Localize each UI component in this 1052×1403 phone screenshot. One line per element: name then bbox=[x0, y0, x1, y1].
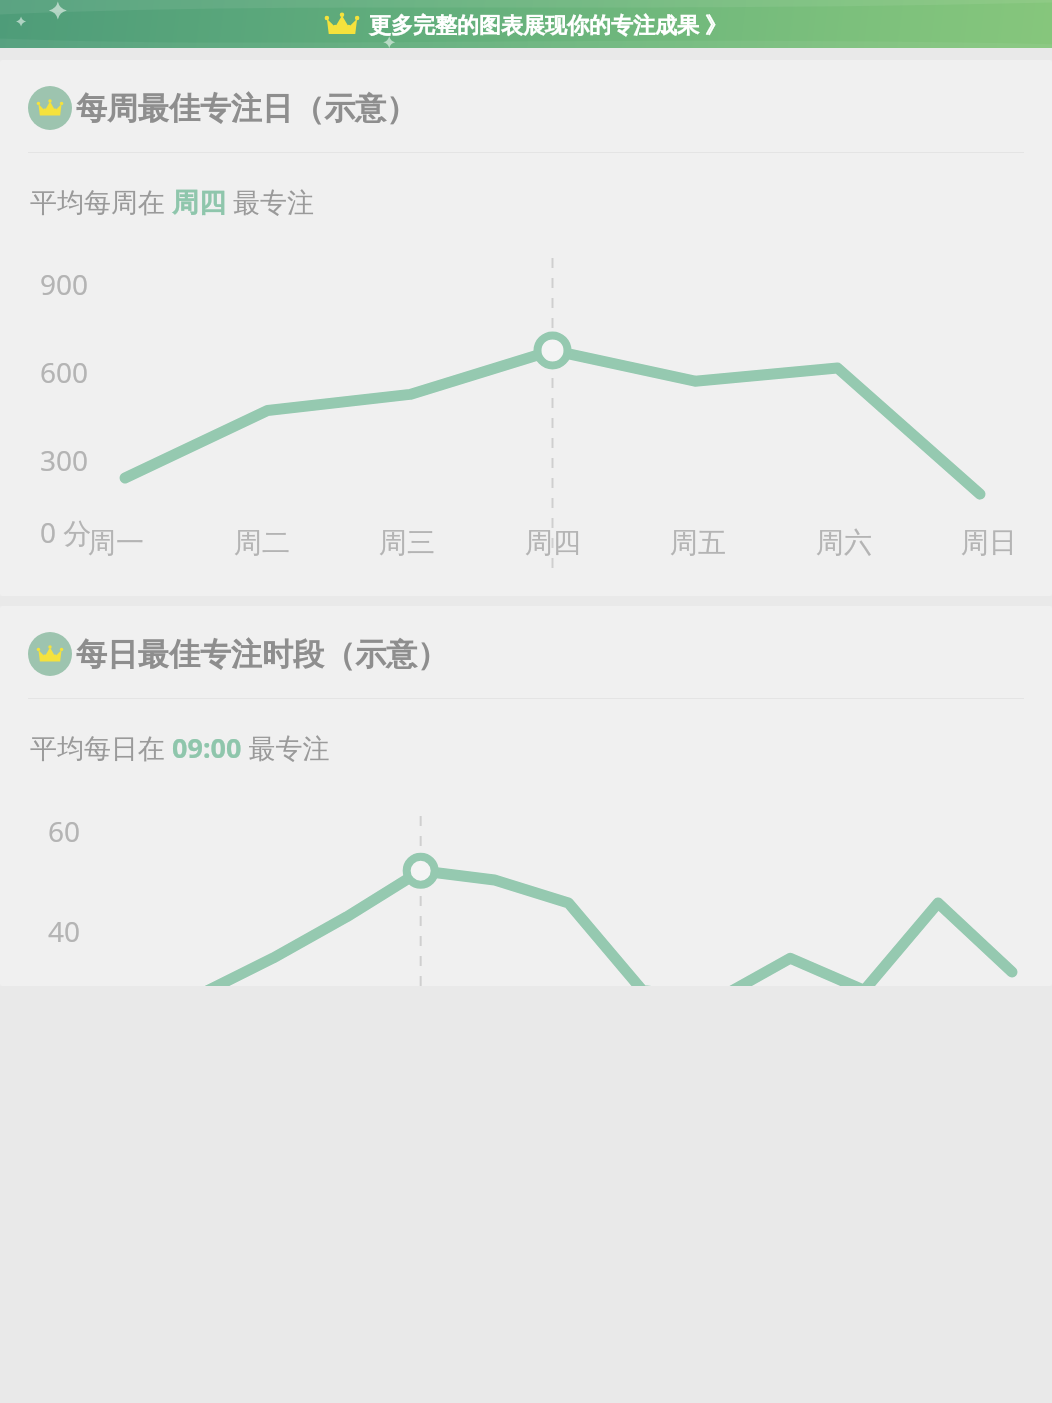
staticText: 周三 bbox=[379, 525, 435, 560]
button[interactable]: Premium bbox=[0, 606, 1052, 986]
staticText: 周一 bbox=[88, 525, 144, 560]
button[interactable]: Premium bbox=[28, 86, 1052, 130]
staticText: 周五 bbox=[670, 525, 726, 560]
other: Premium bbox=[28, 86, 72, 130]
button[interactable]: 更多完整的图表展现你的专注成果 》 bbox=[0, 0, 1052, 48]
staticText: 40 bbox=[48, 912, 81, 950]
staticText: 平均每周在 周四 最专注 bbox=[30, 183, 315, 220]
staticText: 每周最佳专注日（示意） bbox=[76, 89, 417, 128]
button[interactable]: Premium bbox=[28, 632, 1052, 676]
staticText: 周四 bbox=[525, 525, 581, 560]
staticText: 900 bbox=[40, 265, 89, 303]
staticText: 600 bbox=[40, 353, 89, 391]
other: Premium bbox=[28, 632, 72, 676]
staticText: 0 分 bbox=[40, 513, 92, 551]
staticText: 更多完整的图表展现你的专注成果 》 bbox=[369, 9, 727, 39]
staticText: 周二 bbox=[234, 525, 290, 560]
button[interactable]: Premium bbox=[0, 60, 1052, 596]
staticText: 300 bbox=[40, 441, 89, 479]
staticText: 周六 bbox=[816, 525, 872, 560]
staticText: 60 bbox=[48, 812, 81, 850]
staticText: 平均每日在 09:00 最专注 bbox=[30, 729, 330, 766]
staticText: 每日最佳专注时段（示意） bbox=[76, 635, 448, 674]
staticText: 周日 bbox=[961, 525, 1017, 560]
